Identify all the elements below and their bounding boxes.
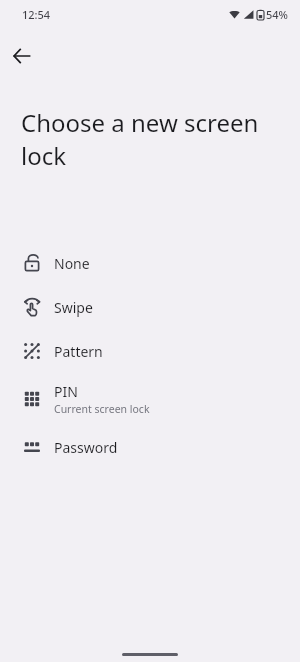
button[interactable]: PIN	[0, 373, 300, 425]
button[interactable]: Password	[0, 425, 300, 469]
button[interactable]: Pattern	[0, 329, 300, 373]
staticText: Password	[54, 438, 118, 457]
staticText: None	[54, 254, 90, 273]
staticText: PIN	[54, 382, 78, 401]
staticText: Current screen lock	[54, 402, 150, 416]
staticText: Pattern	[54, 342, 103, 361]
staticText: Choose a new screen lock	[21, 106, 283, 172]
button[interactable]: Back	[6, 40, 38, 72]
staticText: Swipe	[54, 298, 93, 317]
button[interactable]: None	[0, 241, 300, 285]
staticText: 54%	[266, 7, 288, 22]
staticText: 12:54	[22, 7, 51, 22]
button[interactable]: Swipe	[0, 285, 300, 329]
